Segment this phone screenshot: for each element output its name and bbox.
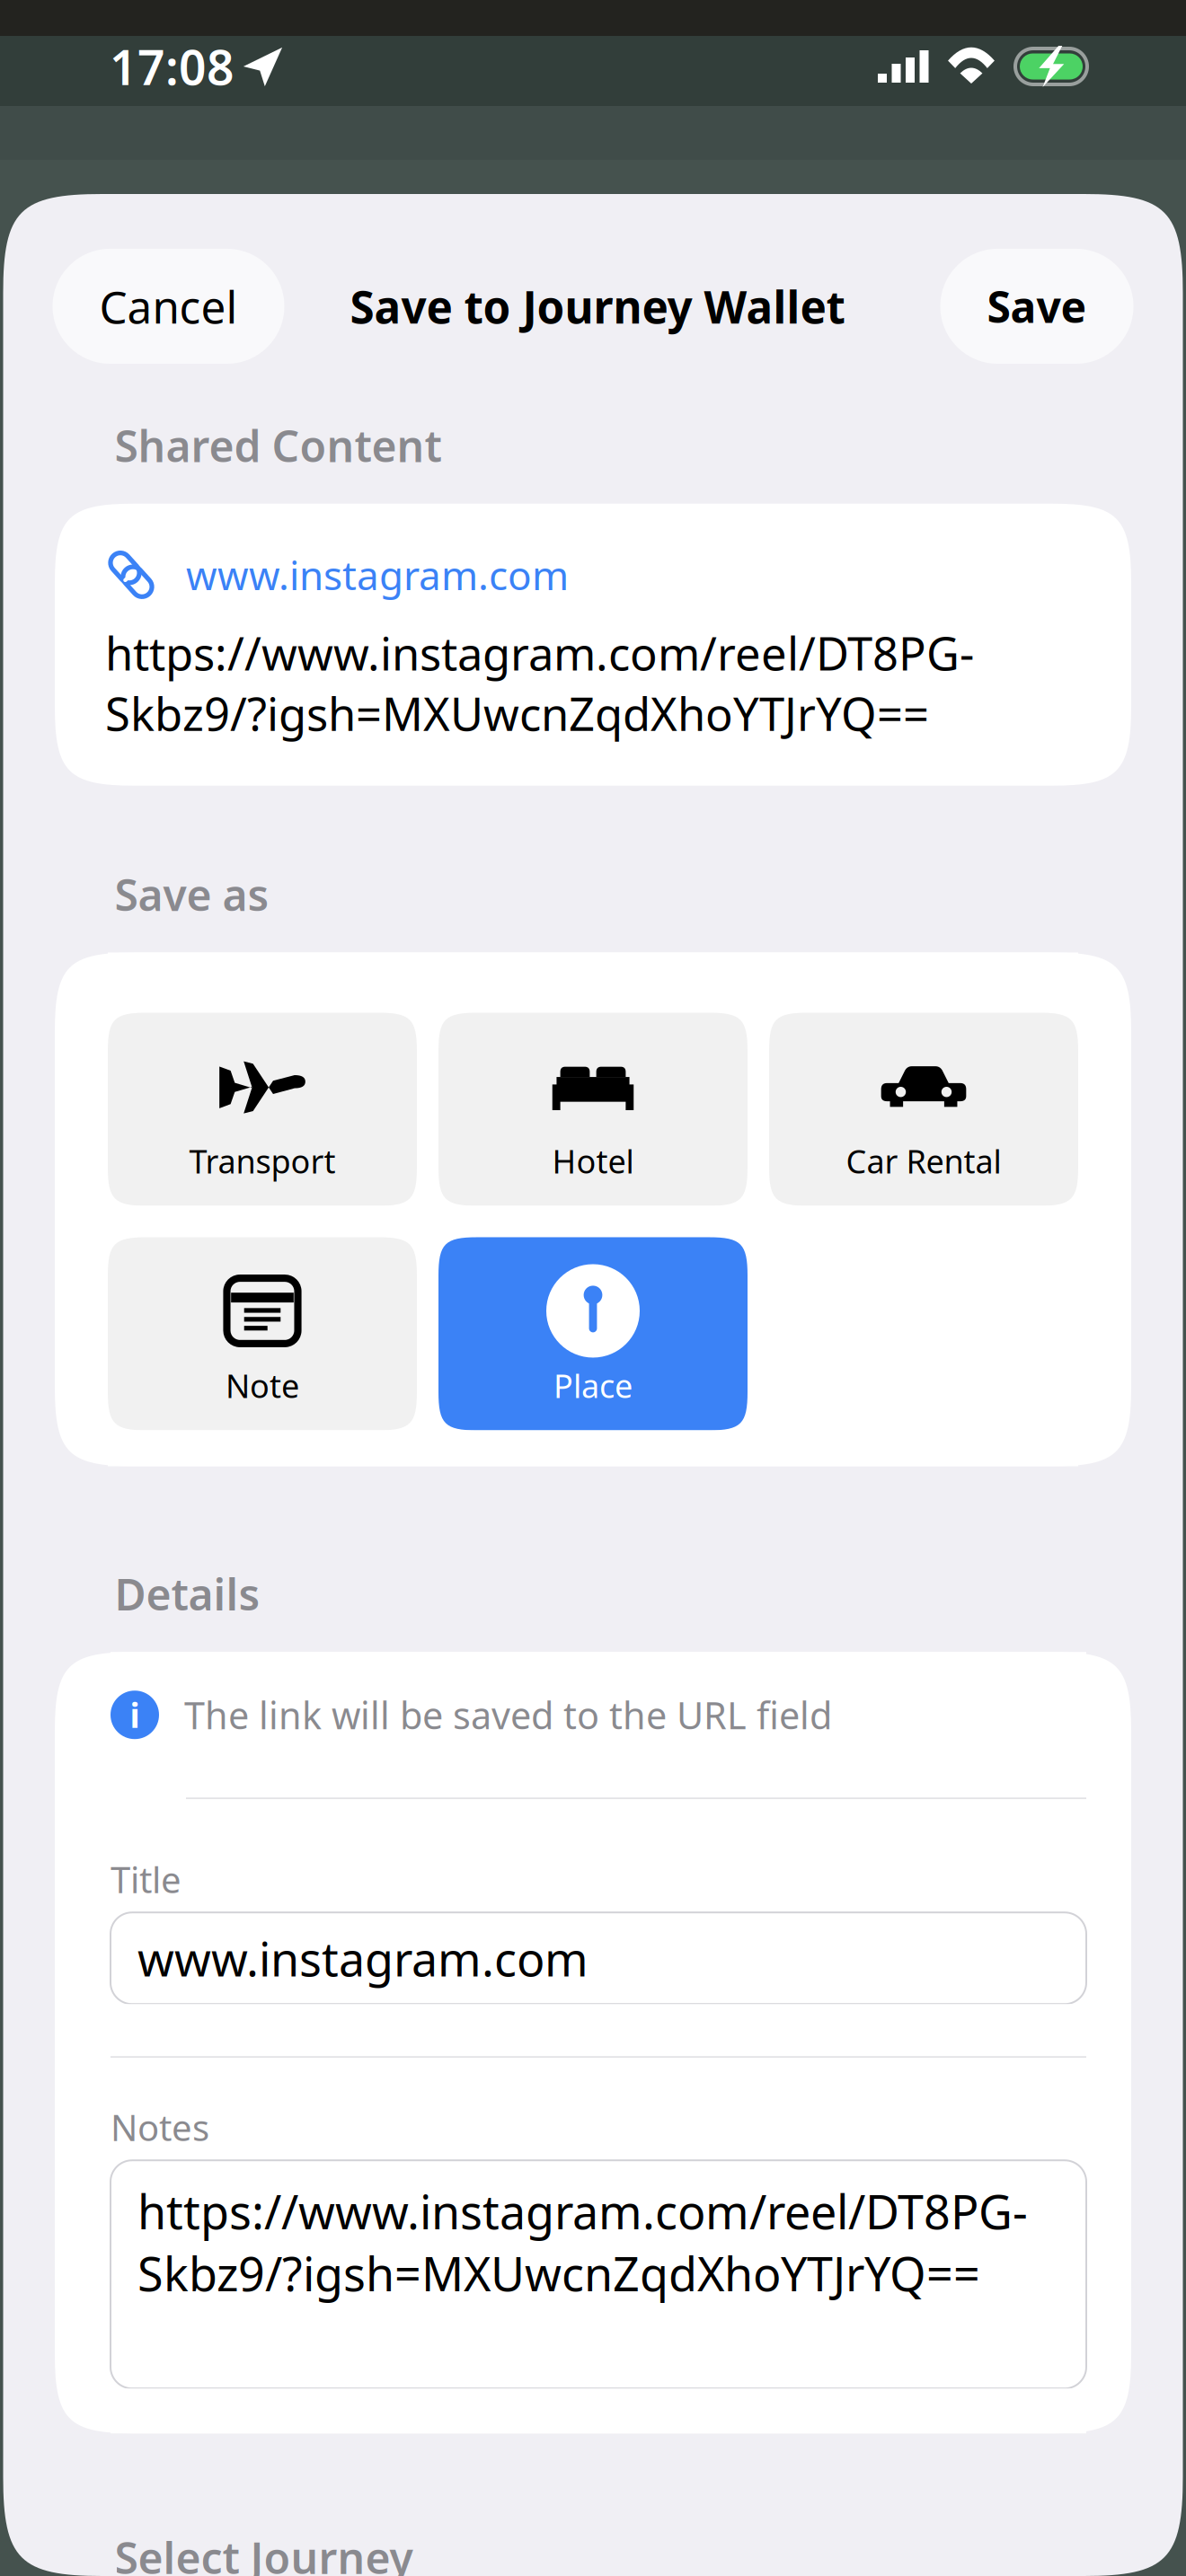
staticText: Save xyxy=(987,278,1087,335)
staticText: Transport xyxy=(189,1140,336,1182)
button[interactable]: Car Rental xyxy=(769,1013,1078,1206)
staticText: Details xyxy=(115,1565,260,1622)
button[interactable]: Note xyxy=(108,1237,417,1430)
staticText: i xyxy=(130,1693,140,1737)
staticText: Place xyxy=(553,1364,633,1407)
staticText: Save as xyxy=(115,866,269,923)
staticText: The link will be saved to the URL field xyxy=(184,1690,832,1740)
staticText: Save to Journey Wallet xyxy=(350,277,845,336)
button[interactable]: Hotel xyxy=(438,1013,748,1206)
staticText: Select Journey xyxy=(115,2529,413,2576)
staticText: Shared Content xyxy=(115,417,442,474)
staticText: Notes xyxy=(111,2103,209,2151)
staticText: Note xyxy=(226,1364,299,1407)
staticText: www.instagram.com xyxy=(137,1927,589,1989)
button[interactable]: Save xyxy=(940,249,1133,364)
button[interactable]: Cancel xyxy=(53,249,284,364)
staticText: https://www.instagram.com/reel/DT8PG-Skb… xyxy=(137,2180,1028,2304)
staticText: Car Rental xyxy=(846,1140,1001,1182)
button[interactable]: Transport xyxy=(108,1013,417,1206)
staticText: Hotel xyxy=(552,1140,634,1182)
staticText: www.instagram.com xyxy=(186,549,569,601)
staticText: https://www.instagram.com/reel/DT8PG-Skb… xyxy=(105,623,974,744)
staticText: 17:08 xyxy=(110,35,235,98)
button[interactable]: Place xyxy=(438,1237,748,1430)
staticText: Cancel xyxy=(99,277,238,336)
staticText: Title xyxy=(111,1855,181,1903)
